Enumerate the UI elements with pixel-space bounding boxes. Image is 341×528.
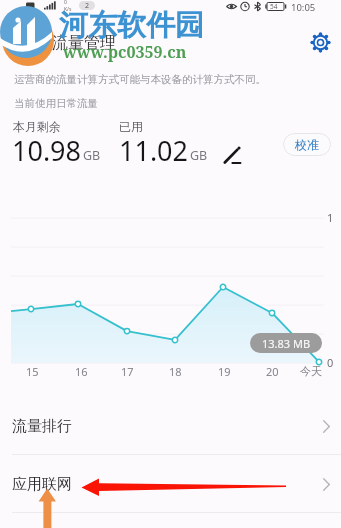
button[interactable]: Settings [306,28,334,56]
staticText: 当前使用日常流量 [14,97,98,110]
staticText: 11.02 [119,132,189,169]
button[interactable]: 流量排行 [0,398,341,455]
staticText: 17 [121,364,134,379]
staticText: 10.98 [12,132,82,169]
staticText: 已用 [119,119,143,134]
staticText: 1 [327,210,334,225]
staticText: 运营商的流量计算方式可能与本设备的计算方式不同。 [14,73,266,86]
button[interactable]: 应用联网 [0,456,341,513]
staticText: GB [83,147,101,164]
staticText: 0 [327,355,334,370]
staticText: 18 [169,364,182,379]
staticText: 河东软件园 [59,7,204,44]
staticText: 15 [26,364,39,379]
staticText: 10:05 [291,1,316,14]
button[interactable]: Edit [220,143,244,167]
staticText: 流量排行 [12,417,72,436]
staticText: 16 [75,364,88,379]
staticText: 13.83 MB [262,336,311,351]
staticText: www.pc0359.cn [63,41,187,63]
staticText: 校准 [295,137,319,152]
staticText: 应用联网 [12,475,72,494]
staticText: 流量管理 [52,33,116,53]
staticText: 2 [85,1,90,10]
staticText: 今天 [300,364,322,378]
staticText: 20 [266,364,279,379]
staticText: 本月剩余 [13,119,61,134]
button[interactable]: 校准 [283,133,331,156]
staticText: 54 [270,2,278,11]
staticText: 0 K/s [64,0,72,12]
staticText: 19 [218,364,231,379]
staticText: GB [190,147,208,164]
